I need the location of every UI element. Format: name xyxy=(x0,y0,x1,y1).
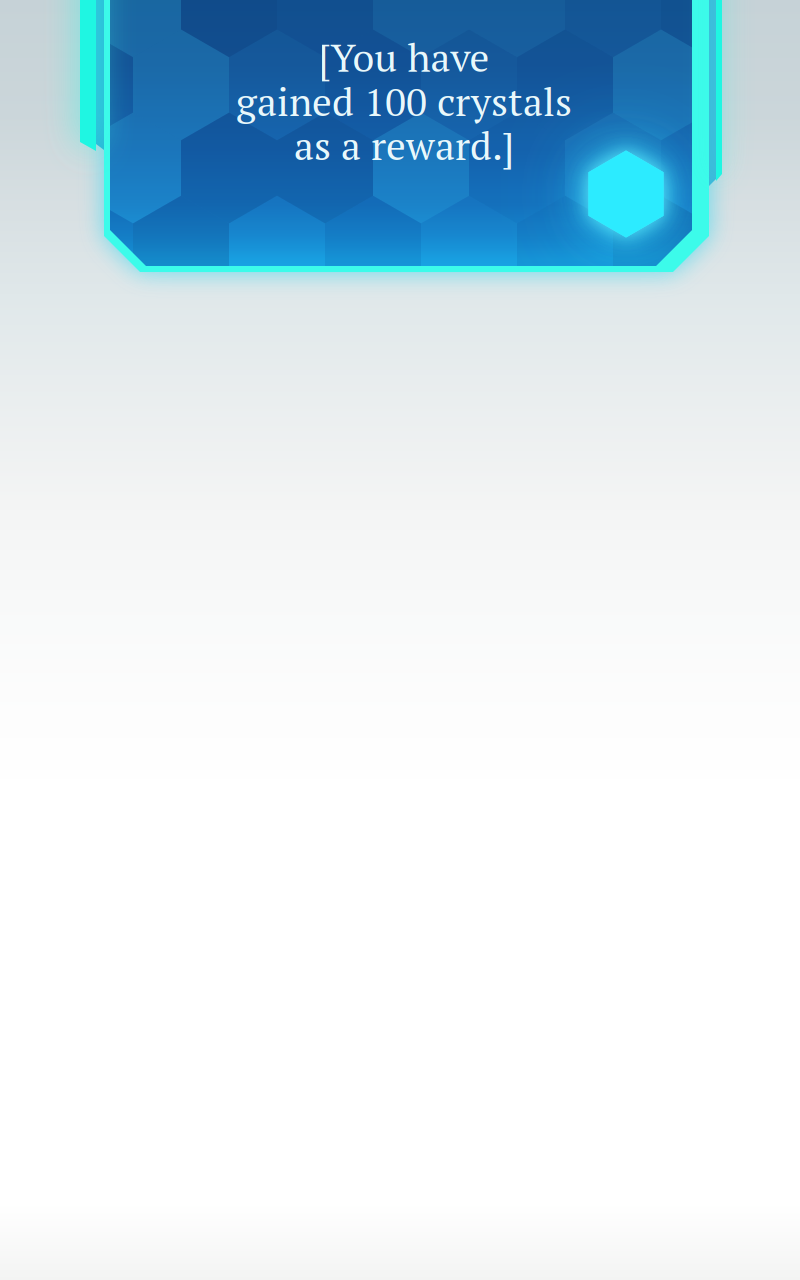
staticText: as a reward.] xyxy=(294,119,514,171)
staticText: gained 100 crystals xyxy=(236,75,572,127)
staticText: [You have xyxy=(318,31,489,83)
